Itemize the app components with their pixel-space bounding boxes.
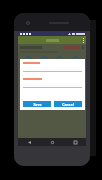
staticText: Cancel	[62, 102, 74, 107]
staticText: Save	[33, 102, 42, 107]
button[interactable]: More options	[83, 38, 84, 43]
button[interactable]: Save	[23, 101, 51, 107]
button[interactable]: Quick action	[40, 55, 49, 67]
button[interactable]: Back	[26, 139, 32, 145]
button[interactable]: Cancel	[54, 101, 82, 107]
button[interactable]: Quick action	[71, 55, 80, 67]
button[interactable]: Recent apps	[72, 139, 78, 145]
button[interactable]: Quick action	[24, 55, 33, 67]
button[interactable]: Quick action	[55, 55, 64, 67]
button[interactable]: Home	[49, 139, 55, 145]
